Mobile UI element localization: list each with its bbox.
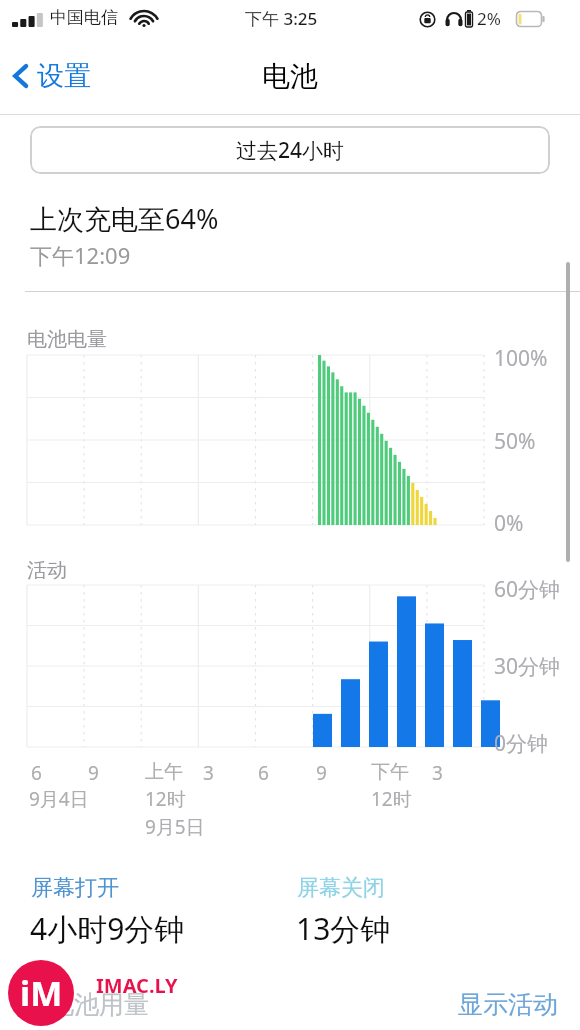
button[interactable]: 过去24小时	[30, 126, 550, 174]
staticText: 6	[258, 760, 269, 786]
staticText: 下午 3:25	[245, 7, 318, 30]
staticText: 30分钟	[494, 652, 561, 681]
staticText: 显示活动	[458, 989, 558, 1020]
staticText: 过去24小时	[236, 136, 345, 165]
other: Back	[12, 61, 30, 91]
staticText: 60分钟	[494, 575, 561, 604]
staticText: 9月4日	[29, 786, 89, 812]
staticText: 电池	[262, 59, 318, 94]
staticText: 2%	[477, 7, 501, 30]
staticText: 活动	[27, 558, 67, 583]
staticText: 中国电信	[50, 7, 118, 28]
staticText: 12时	[145, 786, 186, 812]
staticText: 9	[316, 760, 327, 786]
staticText: 4小时9分钟	[30, 908, 185, 949]
staticText: IMAC.LY	[96, 972, 178, 999]
staticText: 50%	[494, 427, 536, 456]
button[interactable]: Back	[0, 53, 105, 99]
staticText: iM	[20, 970, 63, 1016]
staticText: 屏幕关闭	[297, 874, 385, 902]
staticText: 6	[31, 760, 42, 786]
staticText: 12时	[371, 786, 412, 812]
staticText: 100%	[494, 344, 548, 373]
staticText: 的电池用量	[24, 989, 149, 1020]
staticText: 电池电量	[27, 327, 107, 352]
staticText: 屏幕打开	[31, 874, 119, 902]
staticText: 设置	[37, 59, 91, 93]
staticText: 13分钟	[296, 908, 391, 949]
staticText: 下午	[371, 760, 409, 784]
staticText: 3	[203, 760, 214, 786]
button[interactable]: 显示活动	[452, 985, 564, 1024]
staticText: 9	[88, 760, 99, 786]
staticText: 0%	[494, 509, 524, 538]
staticText: 0分钟	[494, 729, 549, 758]
staticText: 下午12:09	[30, 240, 131, 270]
staticText: 上午	[145, 760, 183, 784]
staticText: 3	[432, 760, 443, 786]
button[interactable]: 的电池用量	[18, 985, 155, 1024]
staticText: 9月5日	[145, 814, 205, 840]
staticText: 上次充电至64%	[30, 200, 219, 237]
